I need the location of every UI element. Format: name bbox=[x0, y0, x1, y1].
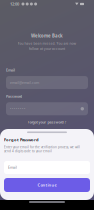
staticText: Forgot your password ? bbox=[27, 120, 66, 125]
staticText: Welcome Back bbox=[31, 33, 63, 39]
staticText: Continue bbox=[37, 182, 56, 188]
staticText: Email bbox=[8, 165, 17, 170]
staticText: 12:00 bbox=[10, 1, 19, 7]
staticText: You have been missed. You are now bbox=[17, 41, 76, 46]
staticText: Forgot Password bbox=[4, 137, 39, 142]
staticText: follow at your account bbox=[29, 46, 65, 51]
staticText: Password bbox=[6, 94, 22, 99]
staticText: email@email.com bbox=[10, 80, 39, 85]
staticText: • • • • • • • • bbox=[10, 106, 25, 111]
button[interactable]: Forgot your password ? bbox=[6, 119, 88, 125]
button[interactable]: Continue bbox=[4, 178, 90, 192]
staticText: Enter your email for the verification pr… bbox=[4, 145, 80, 153]
staticText: Email bbox=[6, 68, 15, 72]
